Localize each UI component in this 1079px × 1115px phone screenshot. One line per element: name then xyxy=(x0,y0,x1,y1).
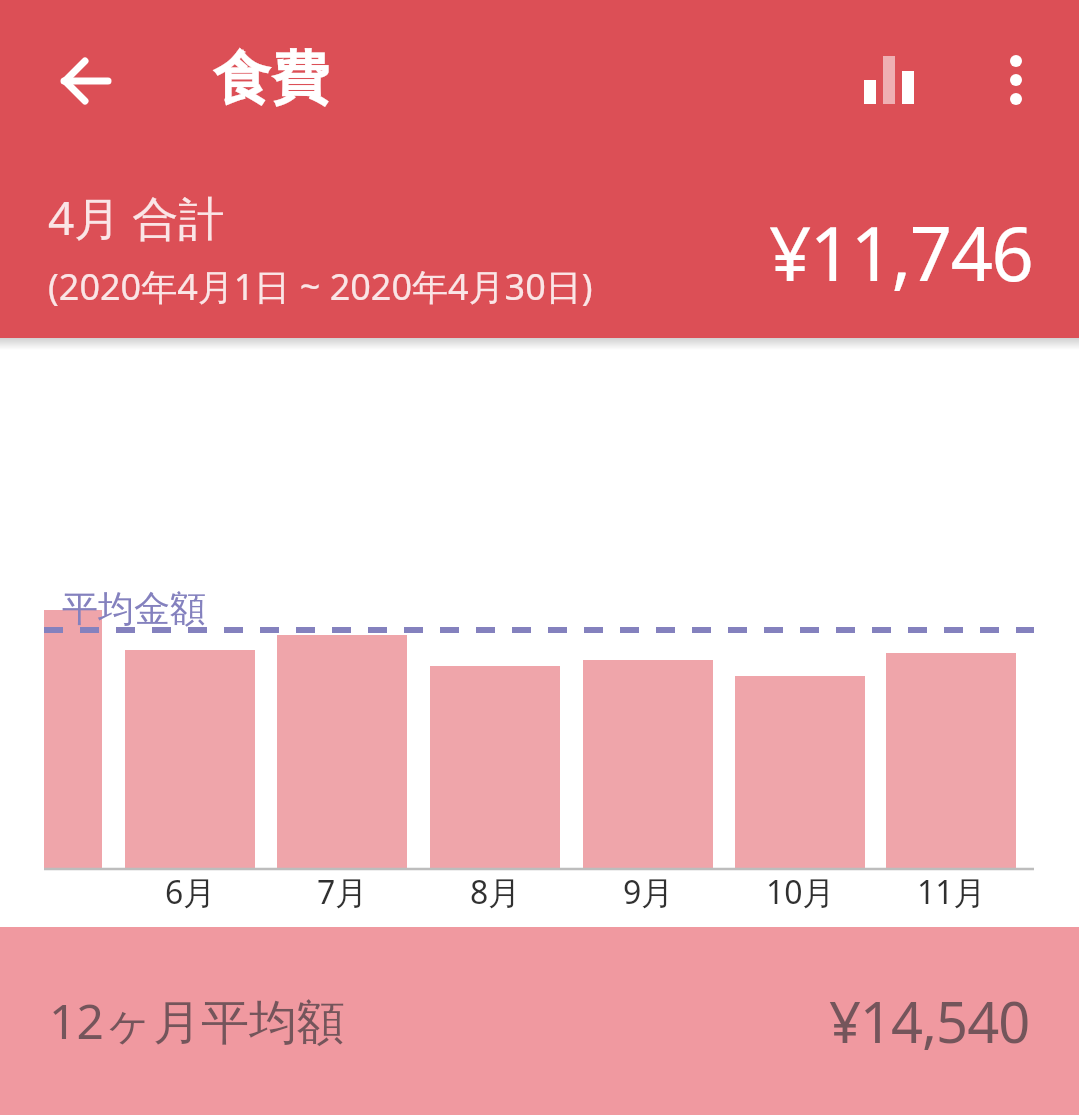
staticText: 12ヶ月平均額 xyxy=(49,988,346,1054)
staticText: ¥14,540 xyxy=(829,983,1030,1059)
staticText: ¥11,746 xyxy=(769,202,1033,303)
staticText: 11月 xyxy=(917,870,986,914)
staticText: 6月 xyxy=(165,870,216,914)
staticText: 8月 xyxy=(470,870,521,914)
button[interactable] xyxy=(978,42,1054,118)
button[interactable] xyxy=(48,43,124,119)
button[interactable] xyxy=(850,42,926,118)
staticText: 10月 xyxy=(766,870,835,914)
staticText: 食費 xyxy=(213,42,329,115)
button[interactable]: 12ヶ月平均額 xyxy=(49,927,1030,1115)
staticText: (2020年4月1日 ~ 2020年4月30日) xyxy=(48,262,593,311)
staticText: 4月 合計 xyxy=(48,186,225,249)
staticText: 7月 xyxy=(317,870,368,914)
staticText: 平均金額 xyxy=(62,586,206,631)
staticText: 9月 xyxy=(623,870,674,914)
